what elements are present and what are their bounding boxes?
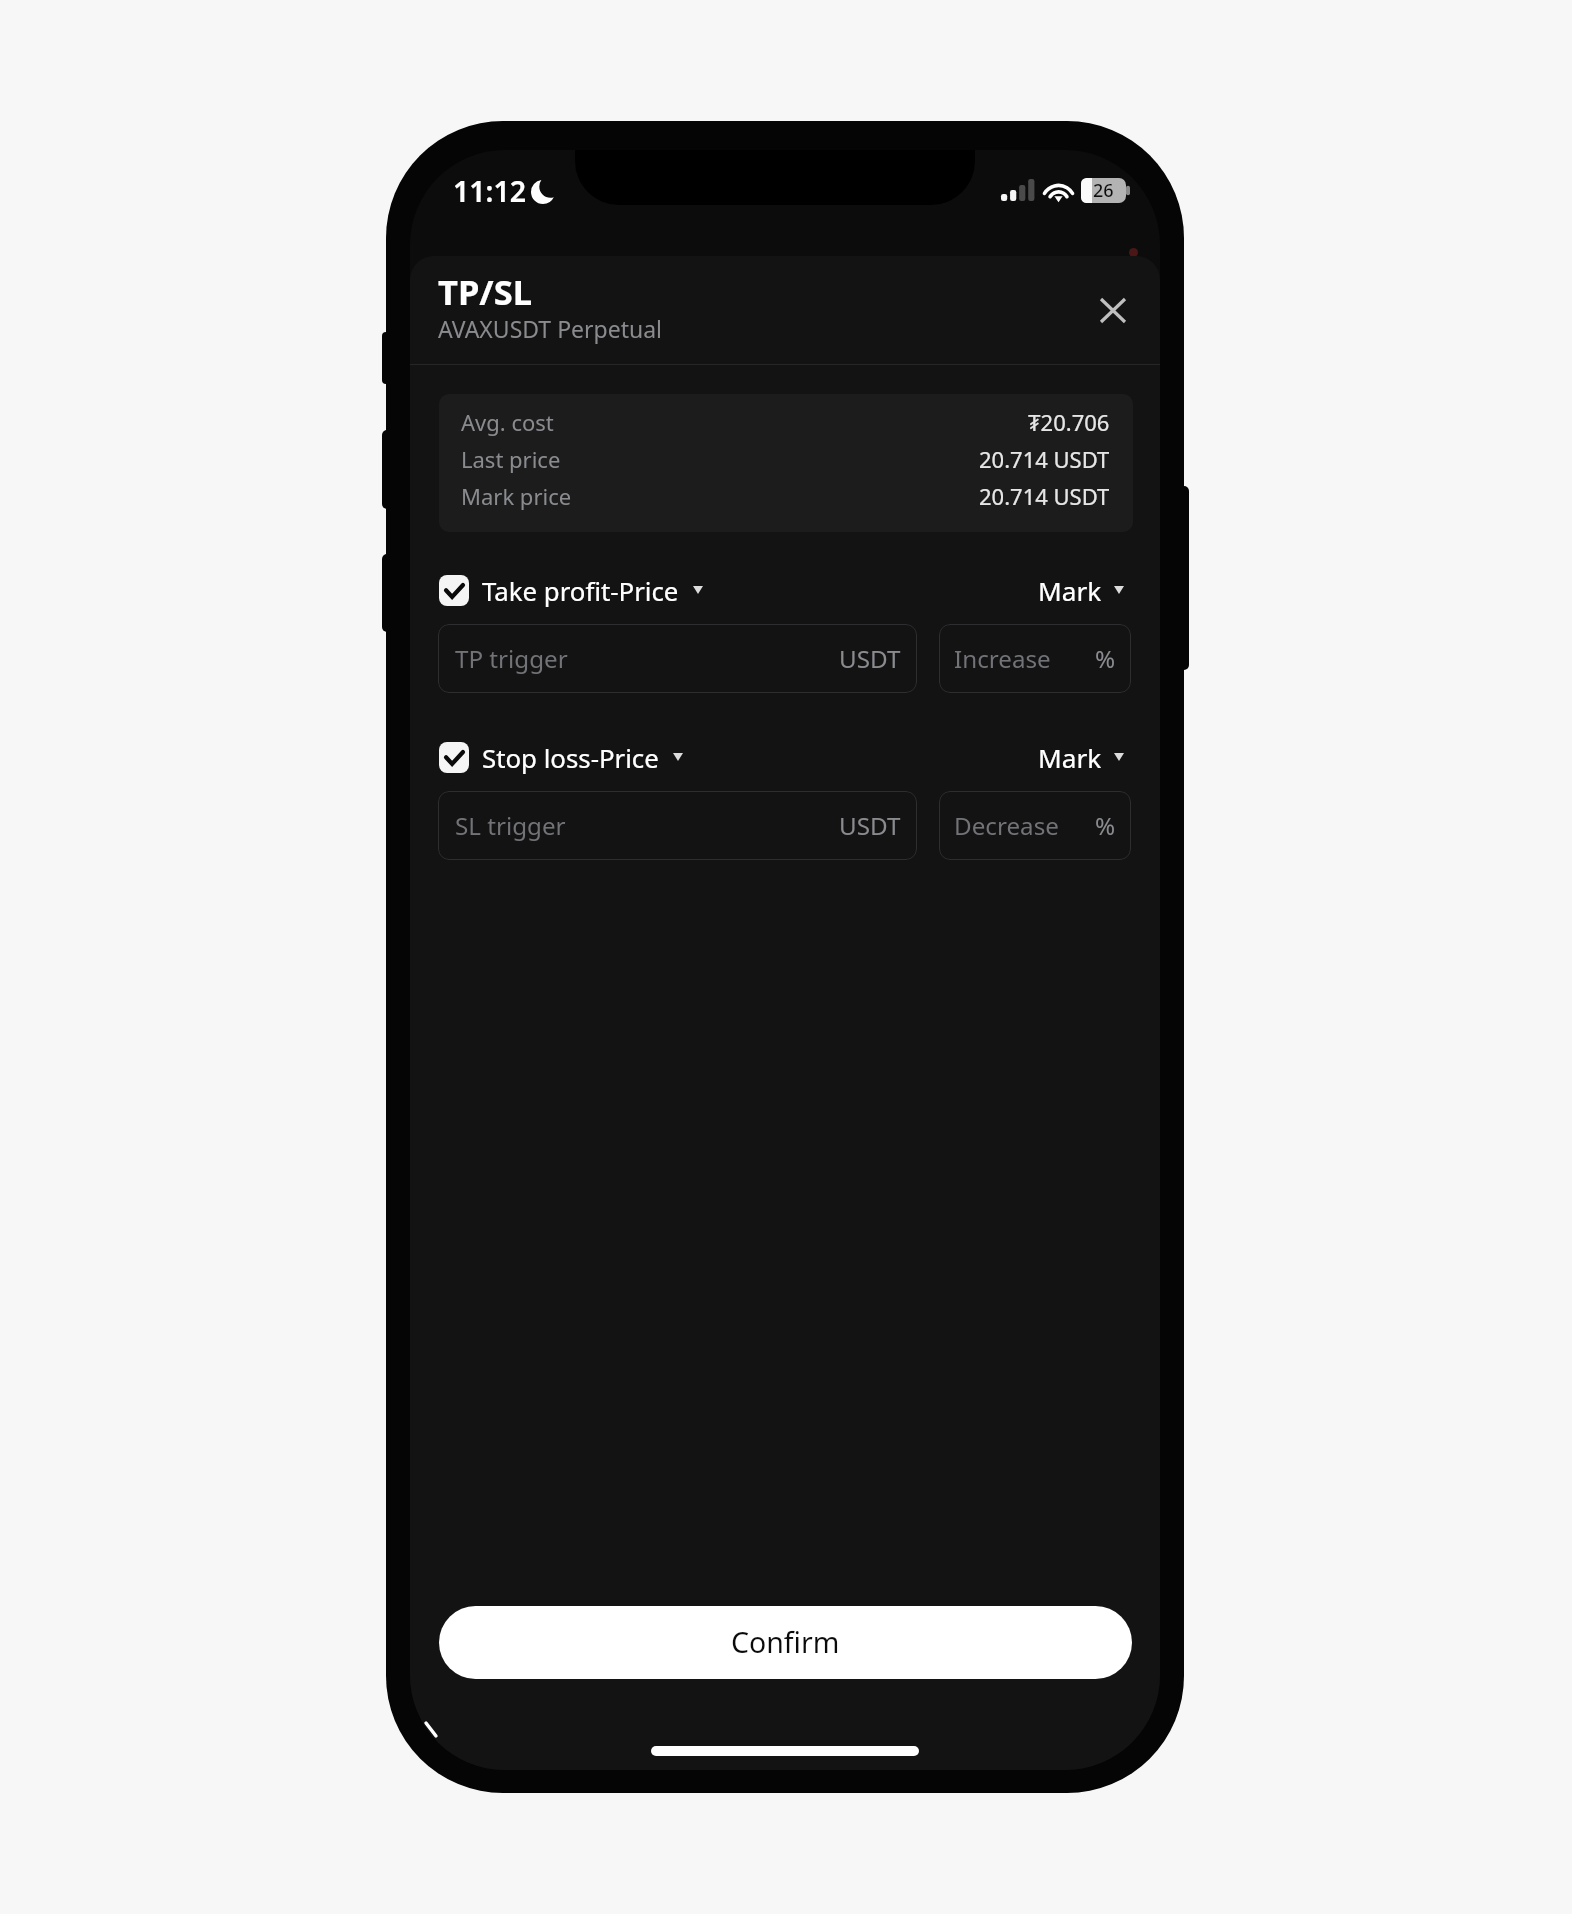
staticText: 26	[1093, 178, 1114, 203]
staticText: TP/SL	[438, 268, 532, 315]
button[interactable]: Increase	[939, 624, 1131, 693]
staticText: 20.714 USDT	[979, 481, 1110, 511]
staticText: AVAXUSDT Perpetual	[438, 313, 662, 344]
staticText: %	[1095, 809, 1116, 842]
staticText: 20.714 USDT	[979, 444, 1110, 474]
button[interactable]: Stop loss-Price	[439, 740, 683, 774]
staticText: ₮20.706	[1028, 407, 1110, 437]
button[interactable]: Take profit-Price	[439, 573, 703, 607]
button[interactable]: Decrease	[939, 791, 1131, 860]
staticText: %	[1095, 642, 1116, 675]
button[interactable]: Mark	[1038, 740, 1124, 774]
staticText: Stop loss-Price	[482, 740, 659, 774]
staticText: Confirm	[731, 1623, 840, 1662]
staticText: 11:12	[453, 172, 527, 211]
staticText: Last price	[461, 444, 561, 474]
button[interactable]: Confirm	[439, 1606, 1132, 1679]
staticText: SL trigger	[455, 809, 566, 842]
staticText: USDT	[839, 642, 901, 675]
button[interactable]: Close	[1087, 284, 1139, 336]
staticText: USDT	[839, 809, 901, 842]
button[interactable]: TP trigger	[438, 624, 917, 693]
staticText: Mark price	[461, 481, 572, 511]
staticText: Mark	[1038, 740, 1102, 774]
staticText: TP trigger	[455, 642, 568, 675]
button[interactable]: SL trigger	[438, 791, 917, 860]
staticText: Avg. cost	[461, 407, 554, 437]
staticText: Decrease	[954, 809, 1059, 842]
button[interactable]: Mark	[1038, 573, 1124, 607]
staticText: Take profit-Price	[482, 573, 679, 607]
staticText: Increase	[954, 642, 1051, 675]
staticText: Mark	[1038, 573, 1102, 607]
